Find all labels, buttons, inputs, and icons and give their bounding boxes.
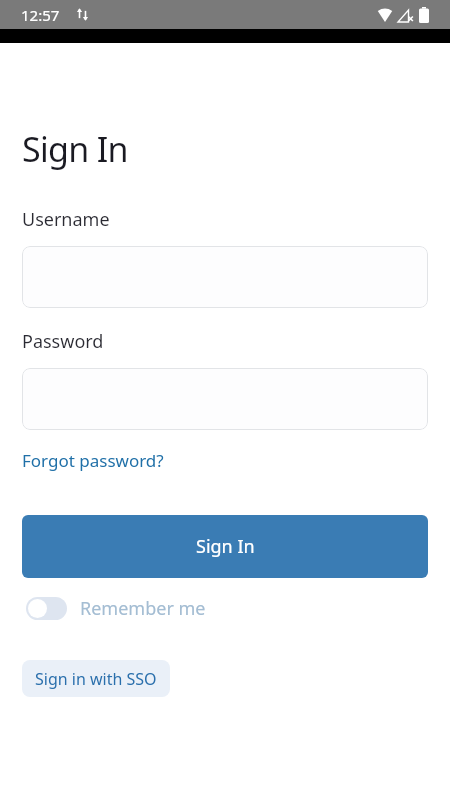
staticText: 12:57: [21, 5, 60, 25]
staticText: Sign In: [22, 126, 128, 172]
staticText: Sign in with SSO: [35, 668, 157, 690]
button[interactable]: [22, 246, 428, 308]
staticText: Remember me: [80, 596, 206, 621]
button[interactable]: Sign in with SSO: [22, 660, 170, 697]
button[interactable]: [22, 368, 428, 430]
button[interactable]: Remember me: [22, 596, 206, 621]
staticText: Username: [22, 207, 110, 232]
staticText: Password: [22, 329, 104, 354]
staticText: Sign In: [196, 534, 255, 559]
button[interactable]: Sign In: [22, 515, 428, 578]
button[interactable]: Forgot password?: [22, 449, 164, 472]
